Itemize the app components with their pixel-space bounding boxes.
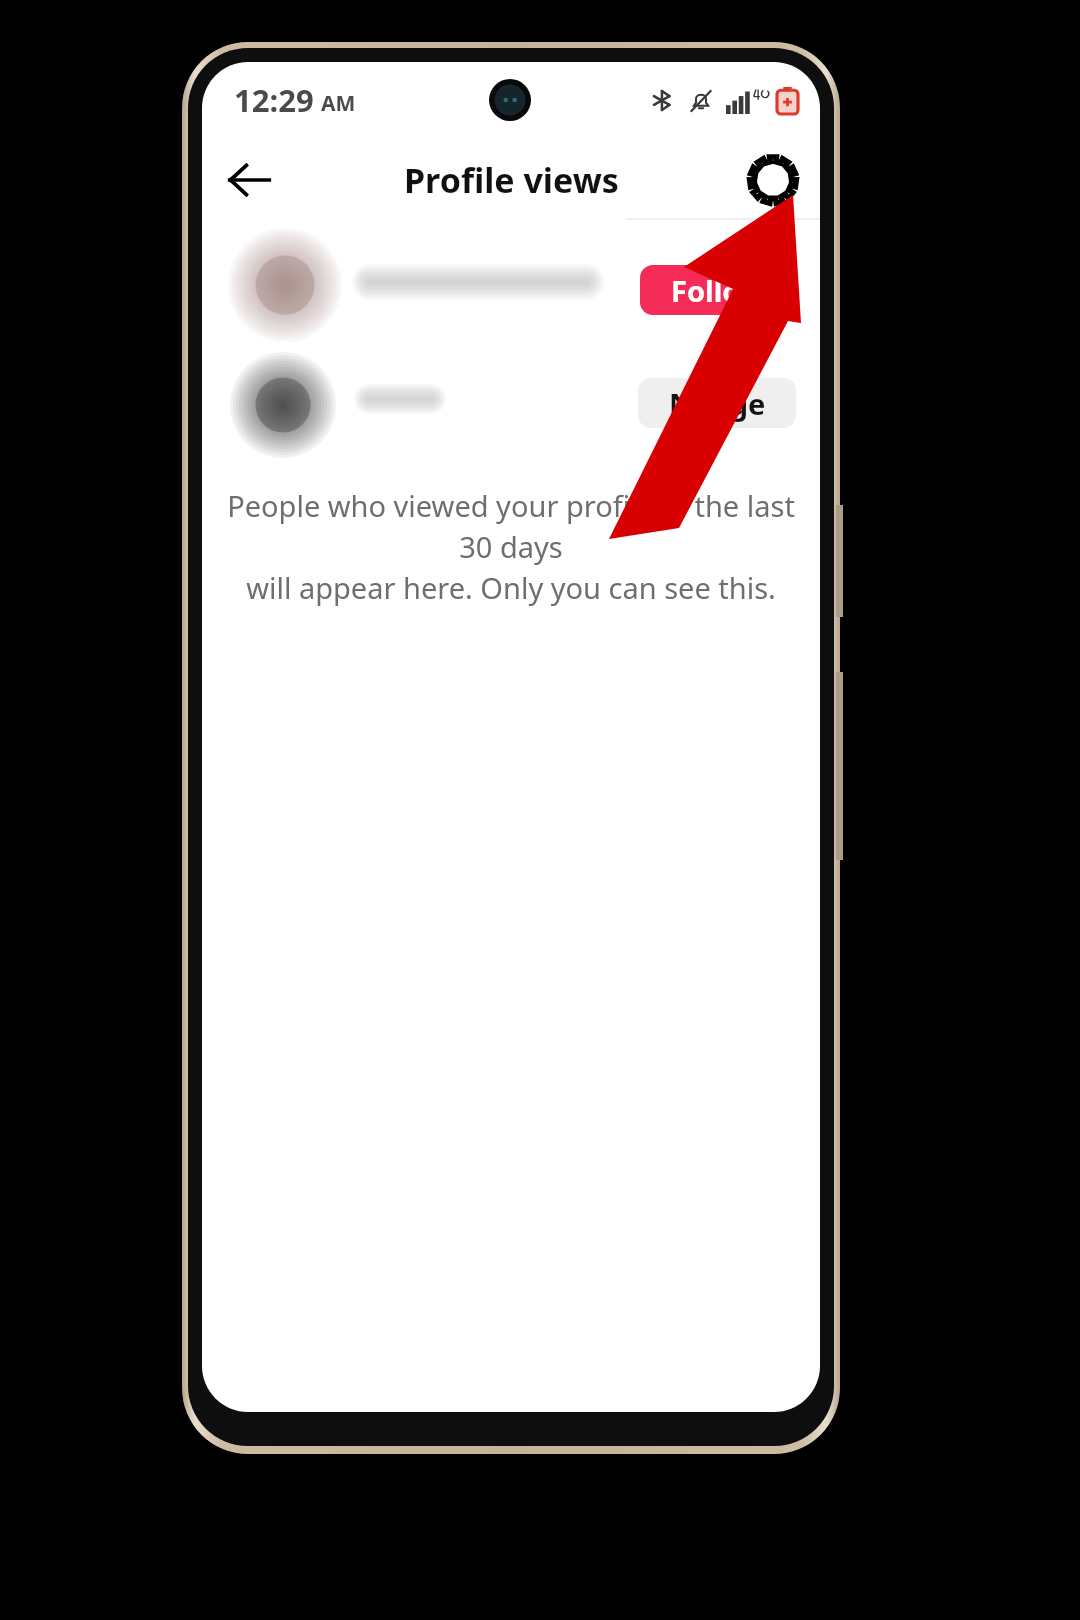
button[interactable] [202, 220, 820, 344]
staticText: 12:29 [234, 79, 314, 121]
staticText: AM [321, 89, 356, 118]
button[interactable]: Follow [640, 265, 796, 315]
staticText: People who viewed your profile in the la… [222, 486, 800, 608]
button[interactable]: Settings [734, 141, 812, 219]
staticText: Follow [671, 271, 765, 310]
staticText: Nudge [669, 384, 766, 423]
button[interactable] [202, 344, 820, 464]
staticText: Profile views [404, 157, 619, 203]
button[interactable]: Nudge [638, 378, 796, 428]
button[interactable]: Back [210, 141, 288, 219]
